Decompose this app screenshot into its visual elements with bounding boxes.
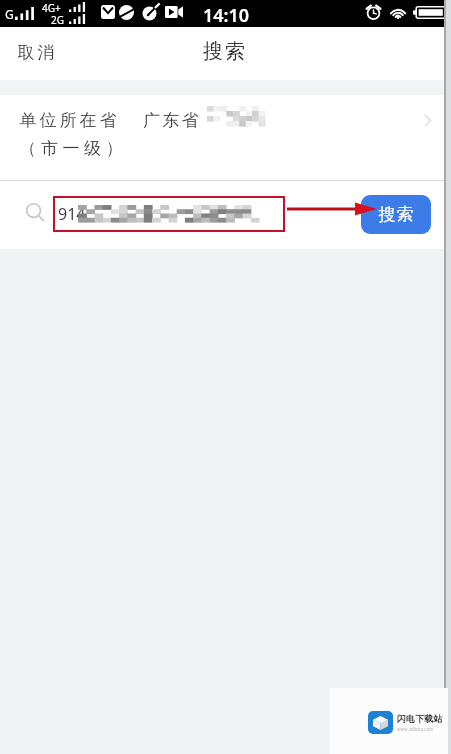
staticText: G: [5, 6, 14, 22]
staticText: www.sdbeta.com: [397, 726, 434, 732]
staticText: 搜索: [202, 39, 246, 64]
staticText: 单位所在省: [18, 110, 118, 131]
staticText: 14:10: [203, 3, 250, 28]
staticText: 取消: [16, 42, 56, 63]
staticText: （市一级）: [17, 138, 125, 159]
staticText: 广东省: [143, 110, 201, 131]
button[interactable]: 搜索: [361, 195, 431, 234]
staticText: 2G: [51, 13, 64, 27]
button[interactable]: 取消: [0, 29, 76, 76]
staticText: 闪电下载站: [397, 713, 443, 724]
staticText: 搜索: [378, 204, 414, 225]
staticText: 914: [58, 203, 86, 225]
staticText: 4G+: [42, 1, 61, 15]
other: Search: [26, 203, 45, 222]
button[interactable]: 单位所在省: [0, 95, 451, 181]
